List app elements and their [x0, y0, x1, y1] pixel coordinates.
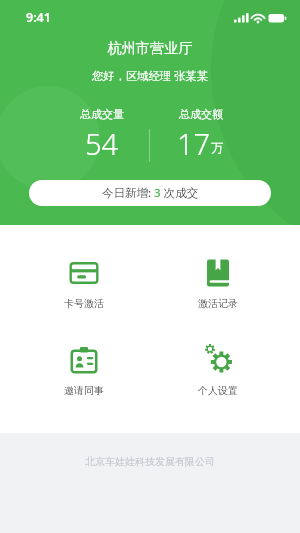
staticText: 54 — [85, 124, 119, 163]
staticText: 激活记录 — [198, 297, 238, 310]
staticText: 您好，区域经理 张某某 — [0, 68, 300, 83]
staticText: 卡号激活 — [64, 297, 104, 310]
other: Activation records — [203, 258, 233, 288]
other: Personal settings — [203, 345, 233, 375]
staticText: 17 — [177, 124, 211, 163]
staticText: 北京车娃娃科技发展有限公司 — [85, 455, 215, 468]
staticText: 邀请同事 — [64, 384, 104, 397]
button[interactable]: 今日新增: 3 次成交 — [29, 180, 271, 206]
staticText: 万 — [211, 140, 224, 156]
button[interactable]: Activation records — [151, 258, 285, 310]
button[interactable]: Personal settings — [151, 345, 285, 397]
staticText: 杭州市营业厅 — [0, 39, 300, 57]
staticText: 总成交量 — [80, 107, 124, 121]
button[interactable]: Invite colleague — [17, 345, 151, 397]
staticText: 今日新增: 3 次成交 — [102, 185, 199, 201]
staticText: 总成交额 — [179, 107, 223, 121]
staticText: 9:41 — [26, 9, 51, 26]
staticText: 个人设置 — [198, 384, 238, 397]
other: Card activation — [69, 258, 99, 288]
button[interactable]: Card activation — [17, 258, 151, 310]
other: Invite colleague — [69, 345, 99, 375]
